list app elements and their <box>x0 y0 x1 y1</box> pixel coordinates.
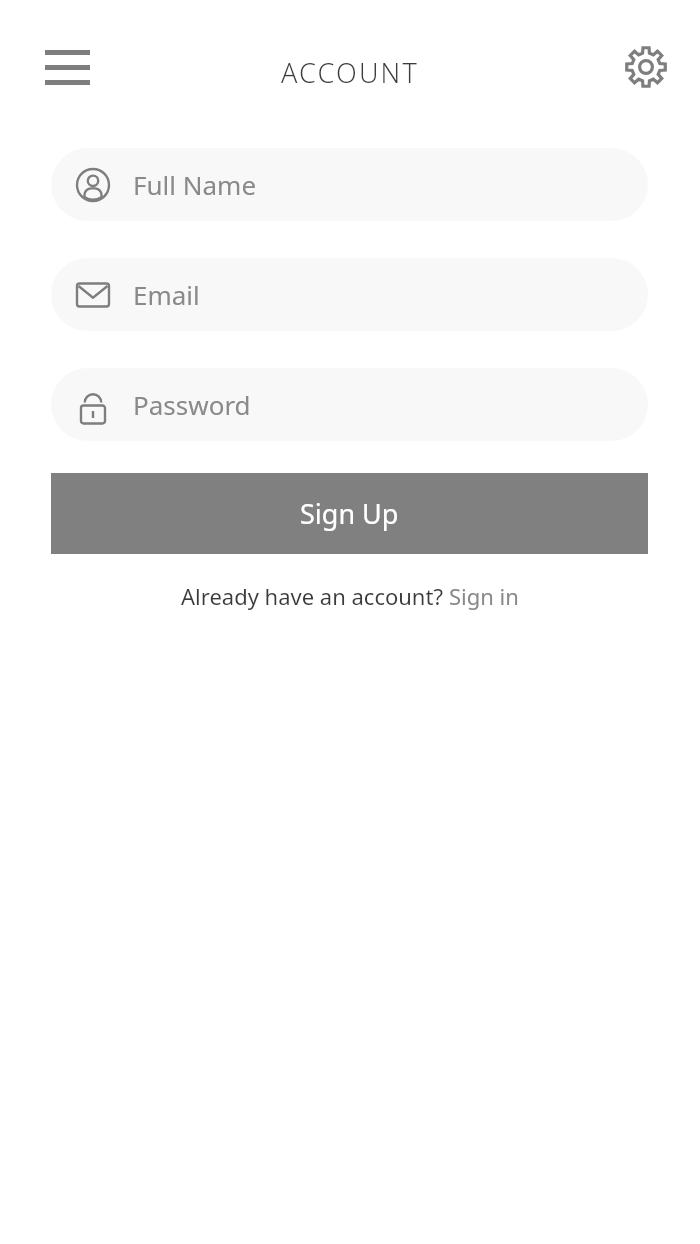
button[interactable]: Menu <box>33 40 101 94</box>
button[interactable]: Full Name <box>51 148 648 221</box>
button[interactable]: Sign Up <box>51 473 648 554</box>
button[interactable]: Settings <box>620 41 672 93</box>
staticText: Already have an account? <box>181 581 449 611</box>
staticText: Password <box>133 387 251 422</box>
button[interactable]: Sign in <box>449 581 519 611</box>
staticText: Email <box>133 277 200 312</box>
staticText: ACCOUNT <box>281 54 420 91</box>
staticText: Sign in <box>449 581 519 611</box>
staticText: Sign Up <box>300 495 399 532</box>
button[interactable]: Password <box>51 368 648 441</box>
button[interactable]: Email <box>51 258 648 331</box>
staticText: Full Name <box>133 167 257 202</box>
